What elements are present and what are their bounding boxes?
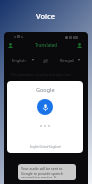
staticText: Bengali: [60, 58, 75, 63]
button[interactable]: Account: [76, 42, 82, 48]
button[interactable]: English: [12, 57, 34, 63]
button[interactable]: Swap languages: [42, 58, 48, 64]
staticText: This translator need to translate text: [10, 72, 71, 77]
staticText: English: [12, 58, 26, 63]
button[interactable]: Bengali: [60, 57, 80, 63]
staticText: Your audio will be sent to Google to pro…: [21, 166, 73, 178]
staticText: Google: [36, 86, 55, 93]
button[interactable]: Google: [7, 81, 83, 153]
staticText: English (United Kingdom): [30, 145, 61, 149]
staticText: Translated: [35, 42, 58, 48]
button[interactable]: Microphone: [37, 99, 53, 115]
staticText: Voice: [36, 11, 56, 21]
button[interactable]: Conversation mode: [7, 42, 13, 48]
